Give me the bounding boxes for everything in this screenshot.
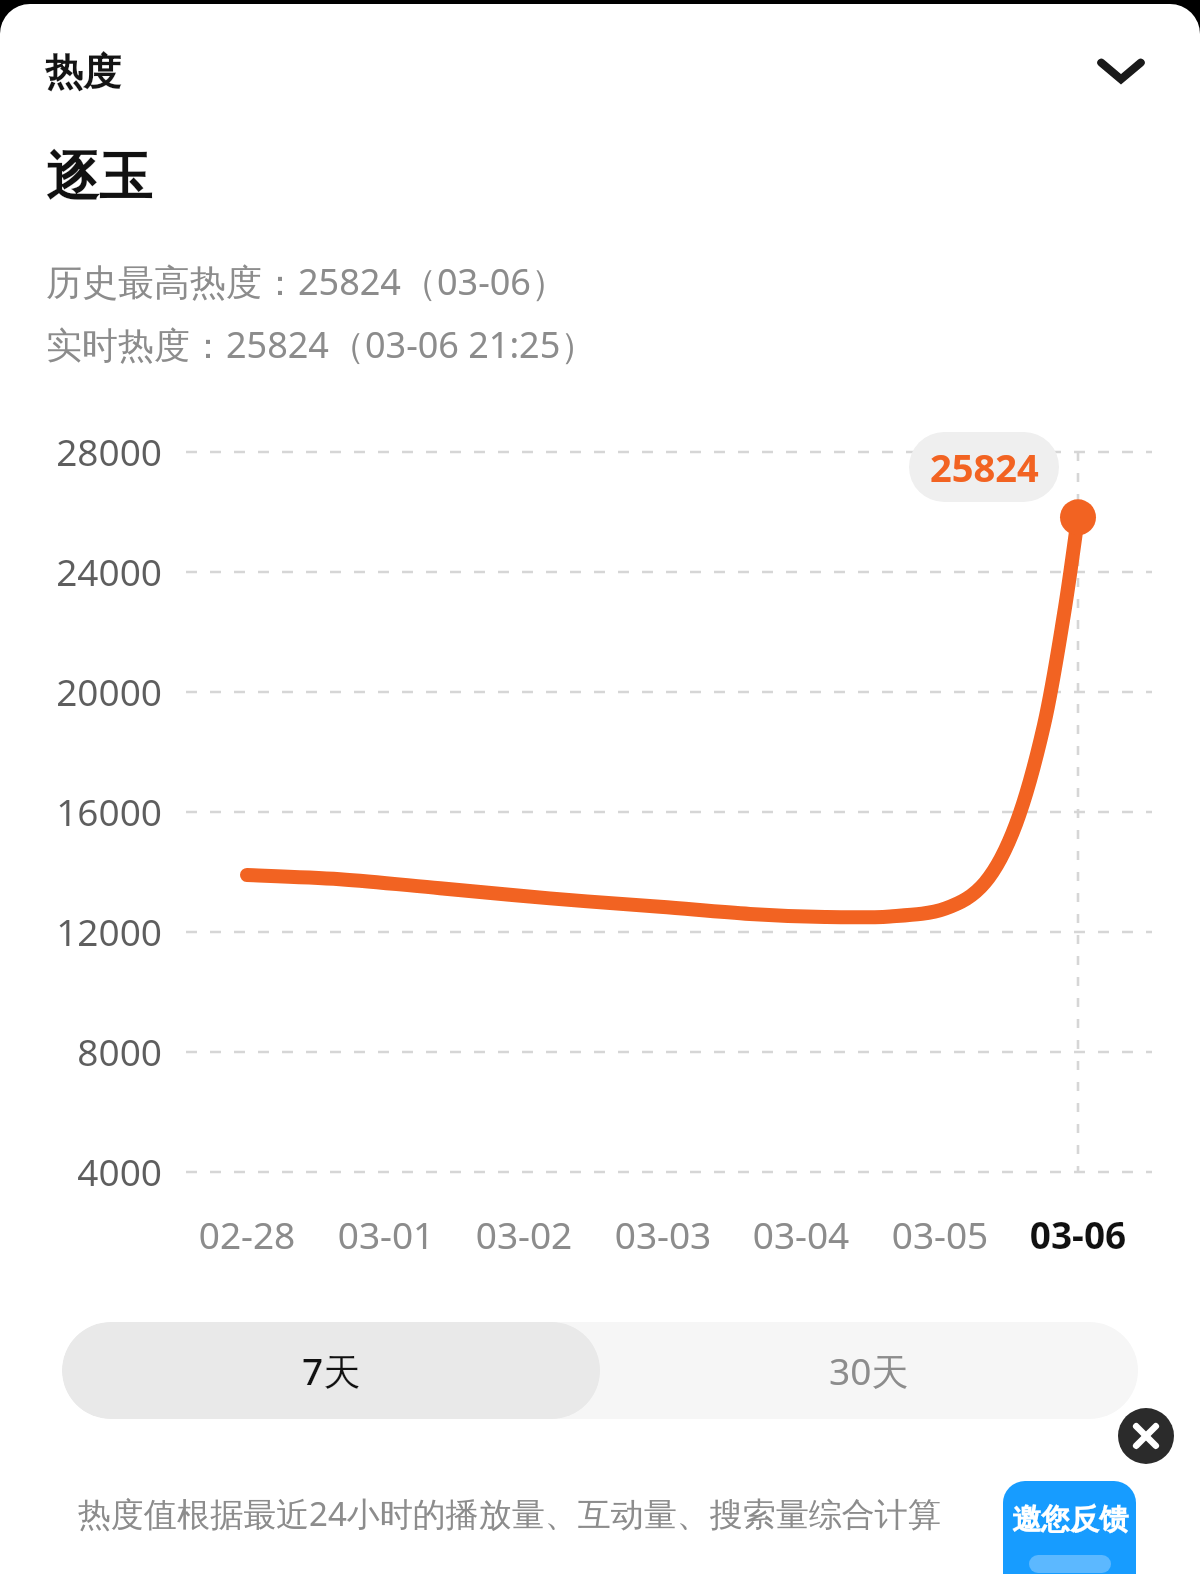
button[interactable]: 7天 [62,1322,600,1419]
staticText: 03-06 [998,1209,1158,1259]
staticText: 25824 [930,441,1039,493]
button[interactable]: Close [1118,1408,1174,1464]
button[interactable]: Collapse [1082,32,1160,110]
staticText: 30天 [829,1345,909,1396]
staticText: 03-04 [721,1209,881,1259]
staticText: 02-28 [167,1209,327,1259]
staticText: 7天 [302,1345,361,1396]
staticText: 03-01 [306,1209,466,1259]
staticText: 邀您反馈 [1012,1501,1128,1538]
staticText: 03-03 [583,1209,743,1259]
staticText: 逐玉 [46,144,152,211]
staticText: 16000 [0,786,162,836]
staticText: 实时热度：25824（03-06 21:25） [46,320,597,369]
staticText: 4000 [0,1146,162,1196]
button[interactable]: 30天 [600,1322,1138,1419]
staticText: 03-02 [444,1209,604,1259]
staticText: 热度值根据最近24小时的播放量、互动量、搜索量综合计算 [78,1491,941,1536]
staticText: 24000 [0,546,162,596]
staticText: 8000 [0,1026,162,1076]
staticText: 热度 [45,48,121,96]
staticText: 12000 [0,906,162,956]
staticText: 28000 [0,426,162,476]
staticText: 20000 [0,666,162,716]
staticText: 03-05 [860,1209,1020,1259]
staticText: 历史最高热度：25824（03-06） [46,257,567,306]
button[interactable]: 邀您反馈 [1003,1481,1136,1574]
